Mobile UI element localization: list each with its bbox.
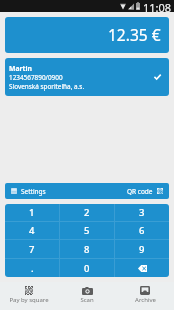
button[interactable]: Scan	[58, 282, 116, 310]
staticText: 6	[139, 224, 145, 237]
staticText: 4	[29, 224, 35, 237]
staticText: 5	[84, 224, 90, 237]
button[interactable]: Martin	[5, 58, 169, 96]
button[interactable]: Pay by square	[0, 282, 58, 310]
button[interactable]: 6	[115, 222, 169, 239]
button[interactable]: Settings	[5, 183, 52, 199]
button[interactable]: 0	[60, 259, 114, 277]
staticText: 12.35 €	[108, 24, 161, 45]
button[interactable]: QR code	[121, 183, 169, 199]
staticText: QR code	[127, 187, 153, 196]
button[interactable]: Backspace	[115, 259, 169, 277]
staticText: 0	[84, 262, 90, 275]
staticText: Martin	[9, 64, 32, 73]
staticText: .	[31, 262, 34, 275]
staticText: 3	[139, 206, 145, 219]
staticText: Scan	[80, 296, 94, 304]
staticText: 1234567890/0900	[9, 73, 63, 82]
button[interactable]: 5	[60, 222, 114, 239]
button[interactable]: 2	[60, 204, 114, 221]
button[interactable]: 3	[115, 204, 169, 221]
staticText: Settings	[21, 187, 46, 196]
staticText: 2	[84, 206, 90, 219]
staticText: 8	[84, 243, 90, 256]
button[interactable]: Archive	[116, 282, 174, 310]
staticText: Slovenská sporiteľňa, a.s.	[9, 82, 85, 91]
button[interactable]: 7	[5, 240, 59, 258]
staticText: 1	[29, 206, 35, 219]
button[interactable]: 4	[5, 222, 59, 239]
staticText: Archive	[135, 296, 156, 304]
staticText: 11:08	[143, 0, 172, 12]
button[interactable]: 9	[115, 240, 169, 258]
button[interactable]: 1	[5, 204, 59, 221]
button[interactable]: .	[5, 259, 59, 277]
button[interactable]: 8	[60, 240, 114, 258]
staticText: 7	[29, 243, 35, 256]
button[interactable]: 12.35 €	[5, 17, 169, 53]
staticText: Pay by square	[9, 296, 49, 304]
other: Backspace	[138, 265, 147, 272]
staticText: 9	[139, 243, 145, 256]
